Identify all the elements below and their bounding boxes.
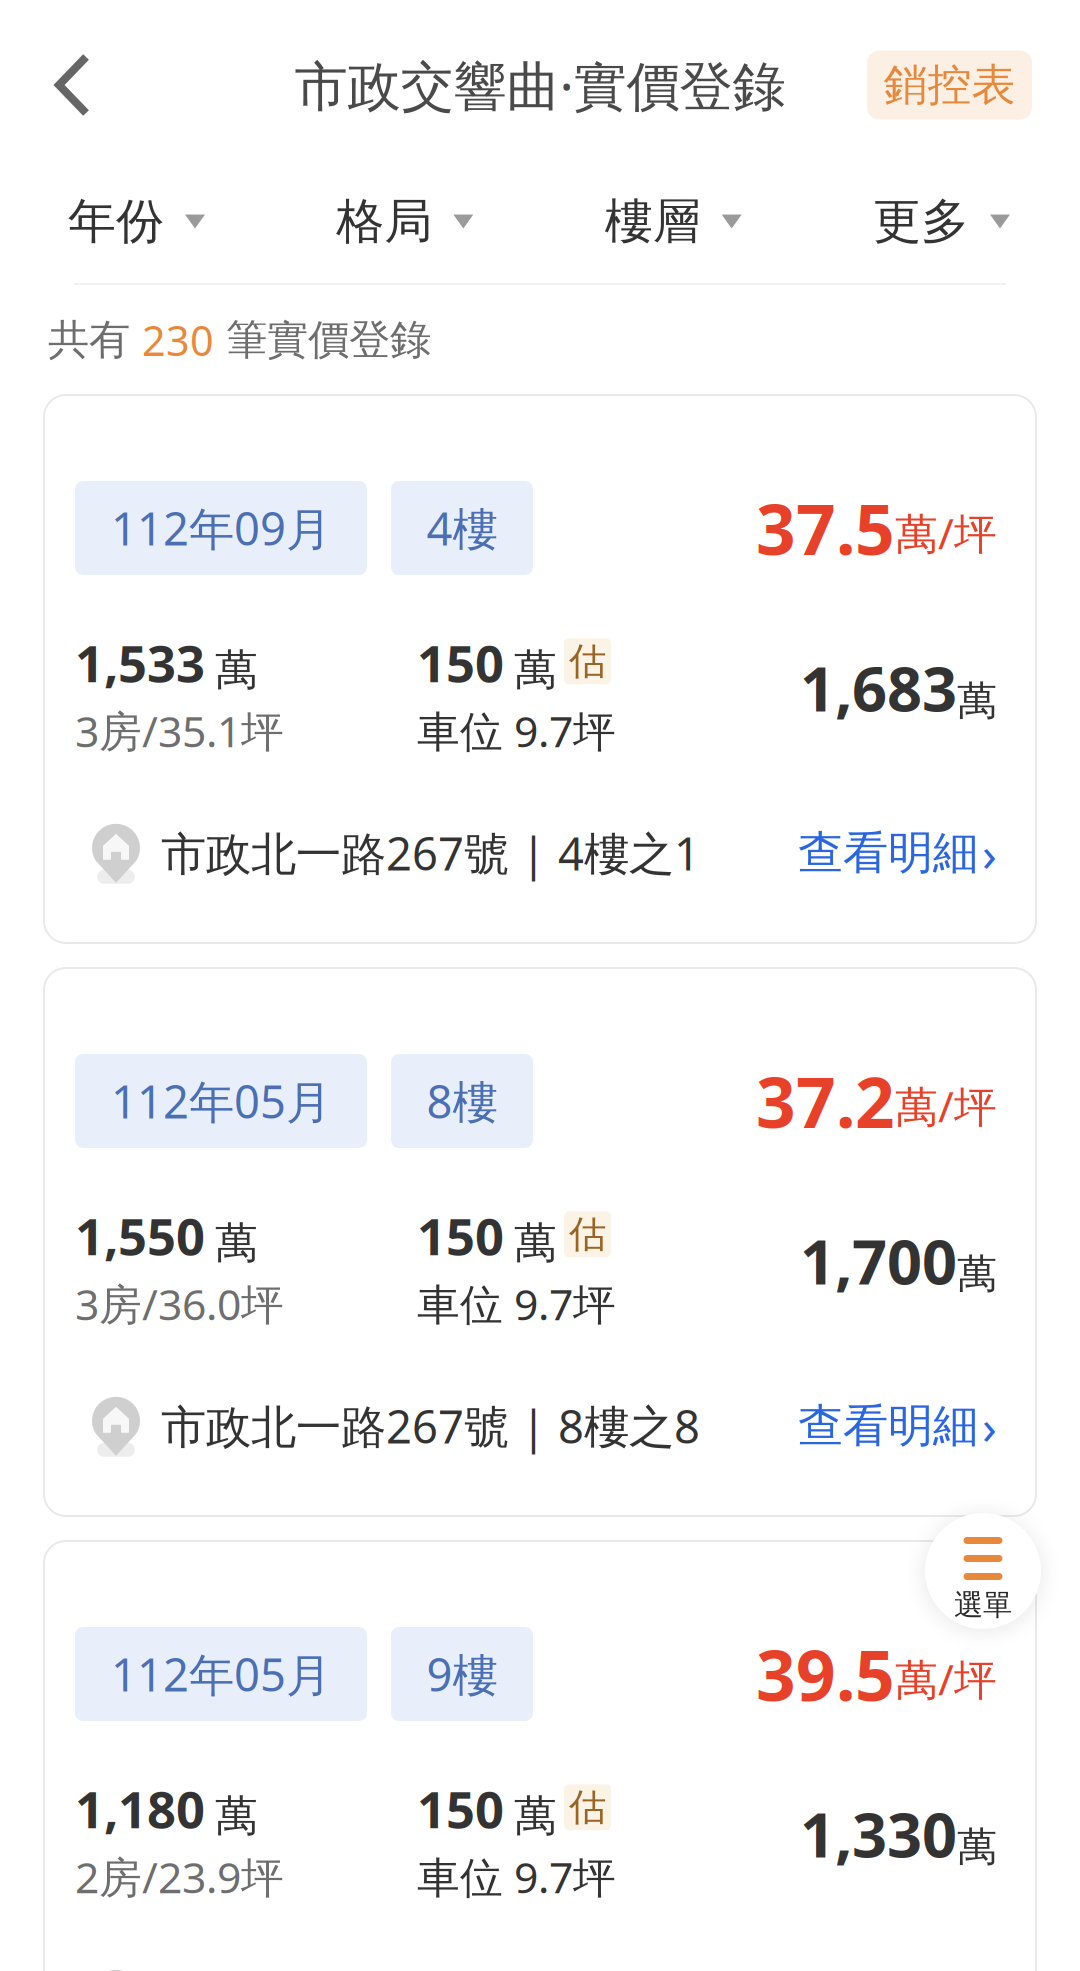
staticText: 筆實價登錄 bbox=[214, 315, 431, 365]
button[interactable]: 銷控表 bbox=[867, 40, 1032, 119]
button[interactable]: 樓層 bbox=[605, 174, 742, 269]
staticText: 更多 bbox=[873, 192, 969, 251]
staticText: 估 bbox=[569, 1784, 606, 1830]
staticText: 萬/坪 bbox=[895, 1650, 997, 1707]
staticText: 查看明細 bbox=[798, 825, 978, 881]
staticText: 1,330 bbox=[800, 1793, 957, 1874]
button[interactable]: 返回 bbox=[54, 20, 154, 140]
staticText: 112年05月 bbox=[111, 1644, 331, 1704]
staticText: 9樓 bbox=[426, 1644, 497, 1704]
staticText: 1,550 bbox=[75, 1202, 205, 1269]
staticText: 車位 9.7坪 bbox=[417, 702, 616, 759]
staticText: 4樓 bbox=[426, 498, 497, 558]
staticText: 年份 bbox=[68, 192, 164, 251]
staticText: 150 bbox=[417, 1202, 504, 1269]
staticText: 150 bbox=[417, 1775, 504, 1842]
staticText: 37.2 bbox=[756, 1055, 895, 1147]
button[interactable]: 112年05月 bbox=[44, 1541, 1036, 1971]
button[interactable]: 選單 bbox=[925, 1513, 1041, 1629]
staticText: 3房/36.0坪 bbox=[75, 1275, 284, 1332]
button[interactable]: 查看明細 bbox=[798, 821, 997, 885]
staticText: 格局 bbox=[336, 192, 432, 251]
staticText: 1,180 bbox=[75, 1775, 205, 1842]
staticText: 萬/坪 bbox=[895, 1077, 997, 1134]
button[interactable]: 格局 bbox=[336, 174, 473, 269]
staticText: 估 bbox=[569, 638, 606, 684]
staticText: 萬 bbox=[957, 676, 997, 725]
staticText: 萬 bbox=[514, 1790, 557, 1842]
staticText: › bbox=[982, 1394, 997, 1458]
staticText: 萬 bbox=[514, 644, 557, 696]
button[interactable]: 更多 bbox=[873, 174, 1010, 269]
staticText: 8樓 bbox=[426, 1071, 497, 1131]
staticText: 查看明細 bbox=[798, 1398, 978, 1454]
staticText: 市政北一路267號 | 8樓之8 bbox=[161, 1396, 700, 1456]
staticText: 市政交響曲·實價登錄 bbox=[294, 50, 785, 120]
staticText: 萬 bbox=[215, 644, 258, 696]
staticText: 萬 bbox=[215, 1790, 258, 1842]
staticText: 銷控表 bbox=[883, 58, 1015, 112]
staticText: 3房/35.1坪 bbox=[75, 702, 284, 759]
staticText: 112年09月 bbox=[111, 498, 331, 558]
button[interactable]: 112年09月 bbox=[44, 395, 1036, 943]
staticText: 萬 bbox=[215, 1217, 258, 1269]
staticText: 車位 9.7坪 bbox=[417, 1275, 616, 1332]
staticText: 230 bbox=[142, 313, 214, 367]
staticText: 萬 bbox=[514, 1217, 557, 1269]
staticText: 1,683 bbox=[800, 647, 957, 728]
staticText: 2房/23.9坪 bbox=[75, 1848, 284, 1905]
button[interactable]: 112年05月 bbox=[44, 968, 1036, 1516]
staticText: 萬/坪 bbox=[895, 504, 997, 561]
staticText: 112年05月 bbox=[111, 1071, 331, 1131]
staticText: 選單 bbox=[954, 1587, 1012, 1623]
staticText: 萬 bbox=[957, 1822, 997, 1871]
staticText: 市政北一路267號 | 4樓之1 bbox=[161, 823, 700, 883]
staticText: 39.5 bbox=[756, 1628, 895, 1720]
staticText: 萬 bbox=[957, 1249, 997, 1298]
button[interactable]: 年份 bbox=[68, 174, 205, 269]
staticText: 1,533 bbox=[75, 629, 205, 696]
staticText: 37.5 bbox=[756, 482, 895, 574]
staticText: 樓層 bbox=[605, 192, 701, 251]
staticText: 1,700 bbox=[800, 1220, 957, 1301]
staticText: › bbox=[982, 821, 997, 885]
staticText: 共有 bbox=[48, 315, 142, 365]
button[interactable]: 查看明細 bbox=[798, 1394, 997, 1458]
staticText: 150 bbox=[417, 629, 504, 696]
staticText: 車位 9.7坪 bbox=[417, 1848, 616, 1905]
staticText: 估 bbox=[569, 1211, 606, 1257]
